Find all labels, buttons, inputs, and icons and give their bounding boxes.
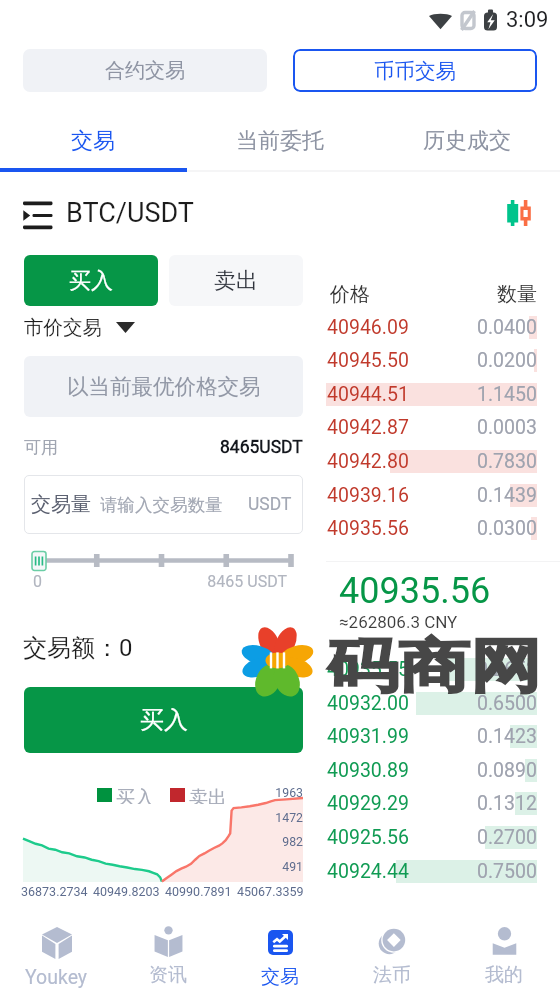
button[interactable]: 当前委托 xyxy=(186,118,373,163)
button[interactable]: 买入 xyxy=(24,687,303,753)
button[interactable]: 合约交易 xyxy=(23,49,267,92)
staticText: 40925.56 xyxy=(327,826,409,849)
button[interactable]: Youkey xyxy=(0,920,112,995)
staticText: 1472 xyxy=(240,811,303,825)
staticText: Youkey xyxy=(25,966,88,989)
staticText: 40935.56 xyxy=(327,517,409,540)
staticText: 40945.50 xyxy=(327,349,409,372)
staticText: 40935.56 xyxy=(339,570,491,612)
button[interactable]: 买入 xyxy=(24,255,158,306)
button[interactable]: 以当前最优价格交易 xyxy=(24,356,303,417)
button[interactable]: 交易量 xyxy=(24,475,303,534)
staticText: 0.2700 xyxy=(477,826,537,849)
staticText: 买入 xyxy=(116,786,154,804)
staticText: 资讯 xyxy=(149,963,187,987)
button[interactable]: 资讯 xyxy=(112,920,224,995)
staticText: 市价交易 xyxy=(24,315,102,340)
button[interactable]: 40935.56 xyxy=(326,517,537,540)
button[interactable]: 历史成交 xyxy=(373,118,560,163)
button[interactable]: 40930.89 xyxy=(326,759,537,782)
staticText: 0.7500 xyxy=(477,860,537,883)
staticText: 当前委托 xyxy=(236,127,324,155)
staticText: 8465 USDT xyxy=(196,572,287,591)
staticText: 8465USDT xyxy=(220,437,303,458)
staticText: 1.1450 xyxy=(477,383,537,406)
staticText: 40949.8203 xyxy=(93,884,160,899)
staticText: 40939.16 xyxy=(327,484,409,507)
staticText: 0 xyxy=(33,572,42,591)
staticText: 491 xyxy=(240,860,303,874)
button[interactable]: 我的 xyxy=(448,920,560,995)
button[interactable]: 40945.50 xyxy=(326,349,537,372)
staticText: 0.0300 xyxy=(477,517,537,540)
button[interactable]: 40931.99 xyxy=(326,725,537,748)
staticText: 交易量 xyxy=(31,492,91,517)
staticText: 交易 xyxy=(261,965,299,989)
button[interactable]: 40924.44 xyxy=(326,860,537,883)
staticText: 40990.7891 xyxy=(165,884,232,899)
staticText: 0.0003 xyxy=(477,416,537,439)
staticText: 币币交易 xyxy=(374,58,456,84)
staticText: 0.0200 xyxy=(477,349,537,372)
button[interactable]: Candlestick chart xyxy=(501,199,527,227)
staticText: 0.2652 xyxy=(477,658,537,681)
staticText: 45067.3359 xyxy=(237,884,304,899)
staticText: 码商网 xyxy=(327,630,541,703)
button[interactable]: 市价交易 xyxy=(24,314,135,341)
staticText: 法币 xyxy=(373,963,411,987)
staticText: 交易 xyxy=(71,127,115,155)
button[interactable]: 40932.00 xyxy=(326,692,537,715)
staticText: 40932.00 xyxy=(327,692,409,715)
staticText: 40946.09 xyxy=(327,316,409,339)
staticText: 0.0400 xyxy=(477,316,537,339)
staticText: 3:09 xyxy=(506,7,549,33)
staticText: 0.1439 xyxy=(477,484,537,507)
staticText: 40931.99 xyxy=(327,725,409,748)
button[interactable]: 40944.51 xyxy=(326,383,537,406)
staticText: 历史成交 xyxy=(423,127,511,155)
staticText: 卖出 xyxy=(214,267,258,295)
staticText: 买入 xyxy=(69,267,113,295)
staticText: 0.1312 xyxy=(477,792,537,815)
staticText: 请输入交易数量 xyxy=(100,494,223,516)
staticText: 合约交易 xyxy=(105,58,185,83)
staticText: 数量 xyxy=(497,282,537,306)
button[interactable]: 40942.87 xyxy=(326,416,537,439)
staticText: 以当前最优价格交易 xyxy=(67,373,261,400)
button[interactable]: 40935.55 xyxy=(326,658,537,681)
staticText: 40929.29 xyxy=(327,792,409,815)
staticText: 我的 xyxy=(485,963,523,987)
button[interactable]: Market list xyxy=(23,198,53,229)
staticText: 40942.80 xyxy=(327,450,409,473)
staticText: 40942.87 xyxy=(327,416,409,439)
button[interactable]: 40939.16 xyxy=(326,484,537,507)
staticText: 交易额：0 xyxy=(23,633,133,663)
button[interactable]: 40929.29 xyxy=(326,792,537,815)
staticText: 0.7830 xyxy=(477,450,537,473)
staticText: BTC/USDT xyxy=(66,197,194,229)
staticText: 40924.44 xyxy=(327,860,409,883)
staticText: 价格 xyxy=(330,282,370,306)
button[interactable]: 40942.80 xyxy=(326,450,537,473)
staticText: 0.1423 xyxy=(477,725,537,748)
button[interactable]: 币币交易 xyxy=(293,49,537,92)
staticText: 1963 xyxy=(240,786,303,800)
staticText: 可用 xyxy=(24,437,58,458)
staticText: ≈262806.3 CNY xyxy=(339,612,458,632)
staticText: 982 xyxy=(240,835,303,849)
staticText: USDT xyxy=(248,494,292,515)
staticText: 买入 xyxy=(140,705,188,735)
button[interactable]: 交易 xyxy=(0,118,186,163)
staticText: 40930.89 xyxy=(327,759,409,782)
button[interactable]: 卖出 xyxy=(169,255,303,306)
staticText: 0.6500 xyxy=(477,692,537,715)
staticText: 40944.51 xyxy=(327,383,409,406)
button[interactable]: 交易 xyxy=(224,920,336,995)
staticText: 40935.55 xyxy=(327,658,409,681)
button[interactable]: 40925.56 xyxy=(326,826,537,849)
button[interactable]: 法币 xyxy=(336,920,448,995)
staticText: 0.0890 xyxy=(477,759,537,782)
staticText: 36873.2734 xyxy=(21,884,88,899)
button[interactable]: 40946.09 xyxy=(326,316,537,339)
staticText: 卖出 xyxy=(189,786,227,804)
